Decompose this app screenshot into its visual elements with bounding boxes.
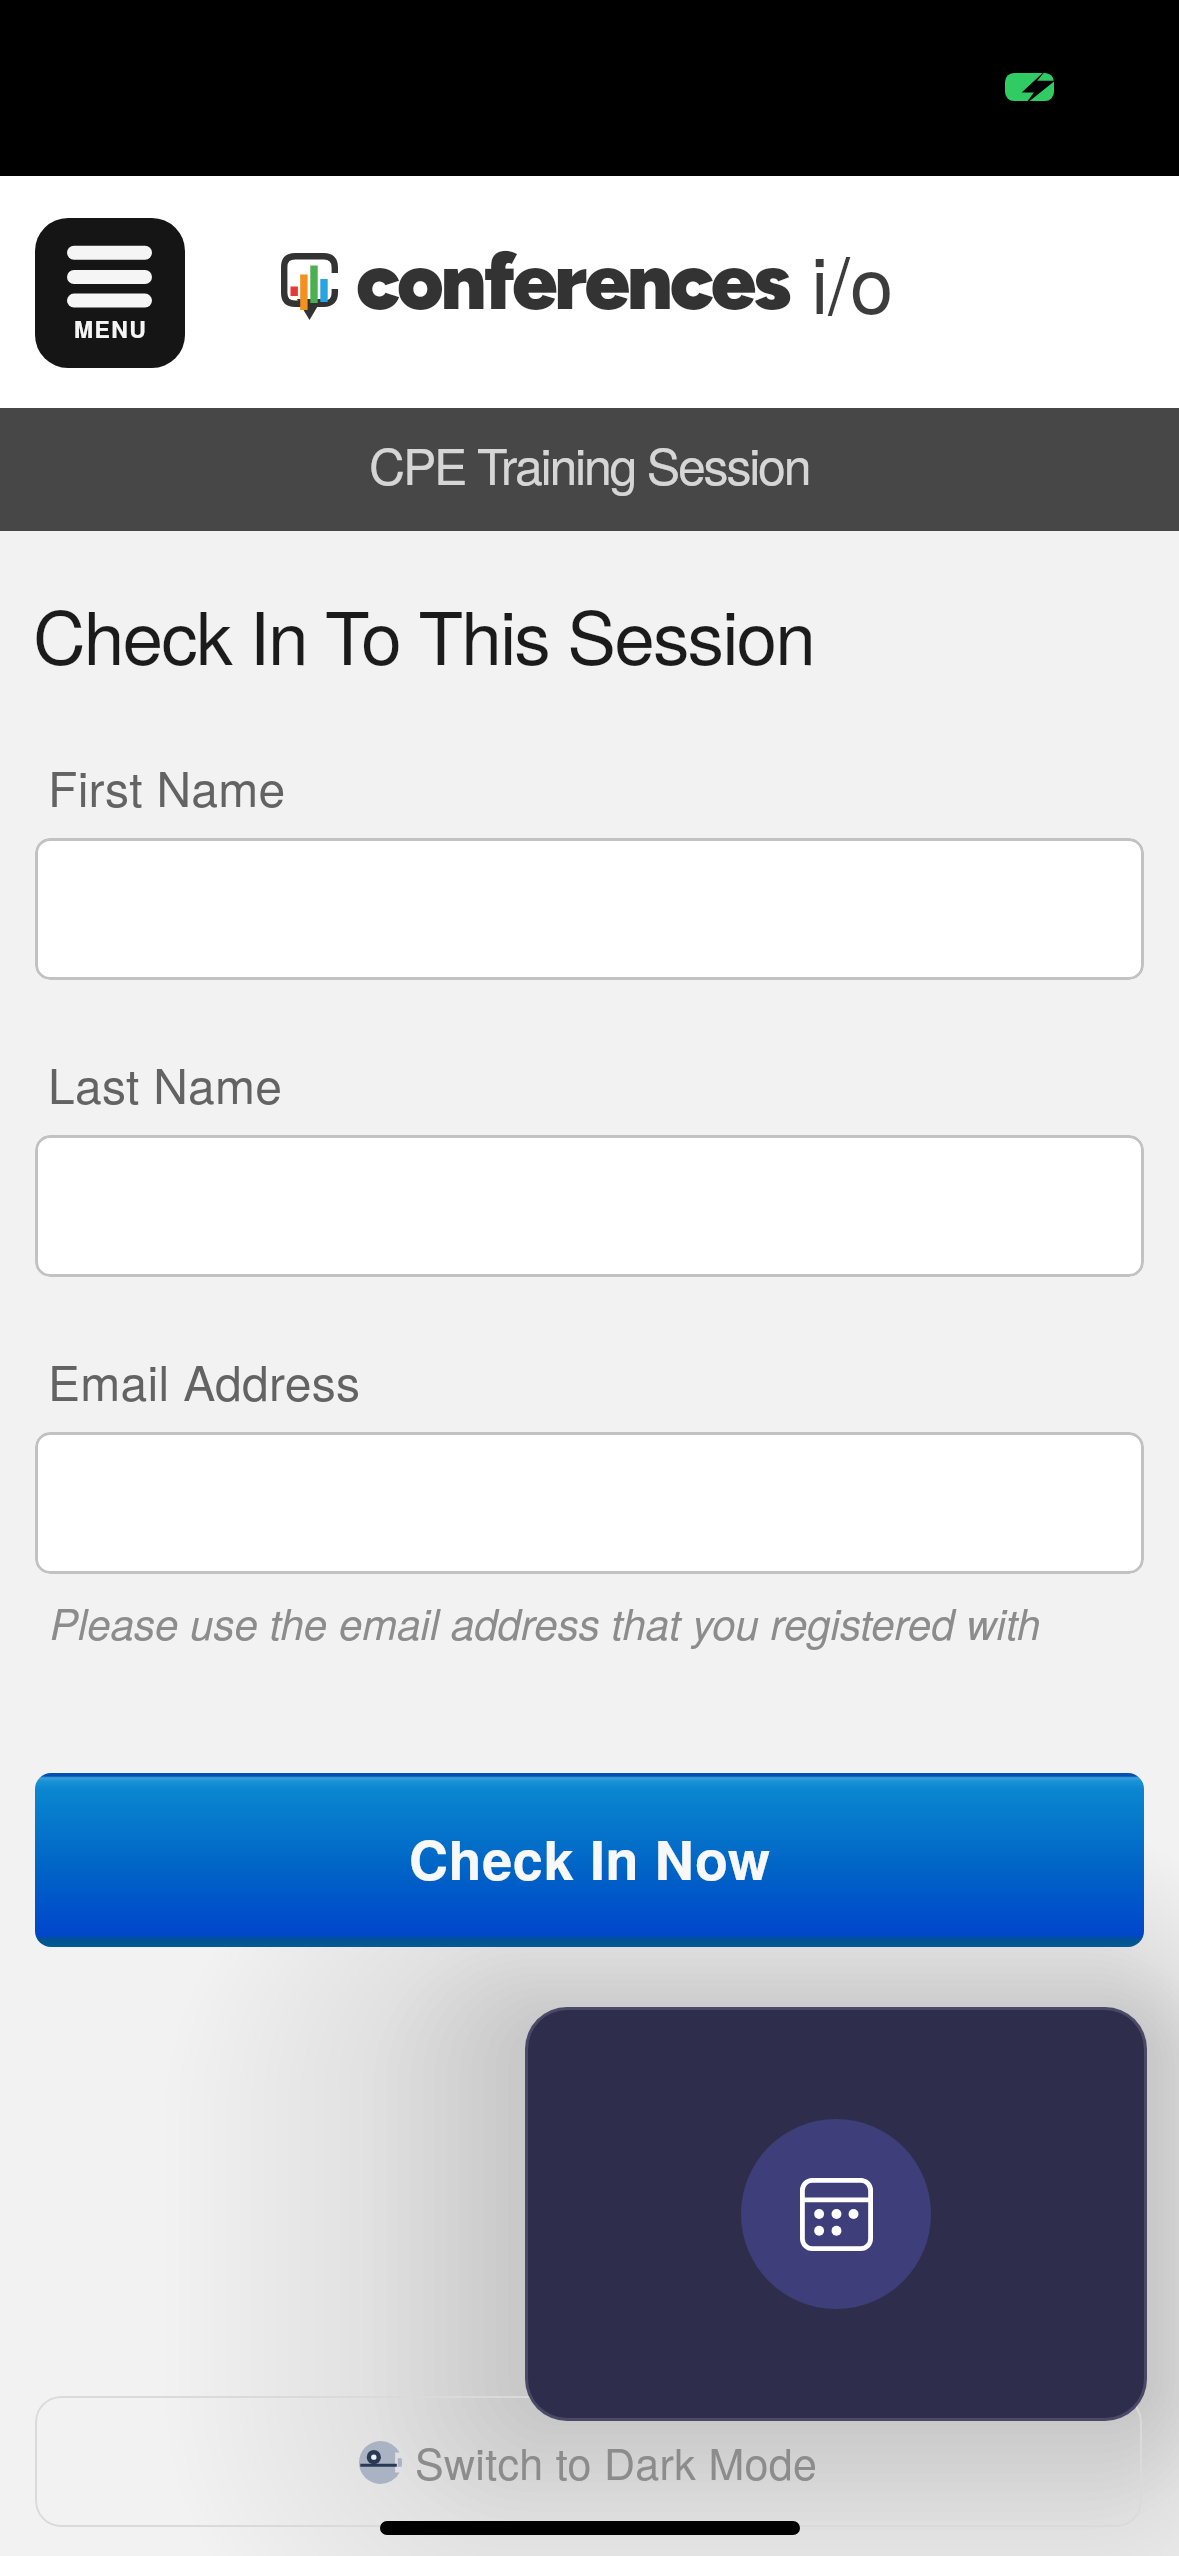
staticText: Please use the email address that you re…	[50, 1593, 1041, 1652]
other: Battery charging	[1005, 73, 1054, 101]
button[interactable]: Email Address	[35, 1432, 1144, 1574]
button[interactable]: Check In Now	[35, 1773, 1144, 1947]
button[interactable]: Add session to calendar	[528, 2010, 1144, 2418]
staticText: First Name	[48, 752, 286, 821]
staticText: CPE Training Session	[369, 428, 810, 500]
staticText: Last Name	[48, 1049, 283, 1118]
staticText: Switch to Dark Mode	[415, 2431, 818, 2493]
staticText: conferences	[356, 233, 790, 329]
staticText: Email Address	[48, 1346, 361, 1415]
staticText: Check In To This Session	[33, 581, 815, 686]
button[interactable]: First Name	[35, 838, 1144, 980]
staticText: MENU	[74, 312, 148, 345]
button[interactable]: Last Name	[35, 1135, 1144, 1277]
button[interactable]: Switch to Dark Mode	[35, 2396, 1142, 2527]
button[interactable]: Menu	[35, 218, 185, 368]
staticText: i/o	[811, 224, 894, 336]
staticText: Check In Now	[409, 1819, 771, 1896]
